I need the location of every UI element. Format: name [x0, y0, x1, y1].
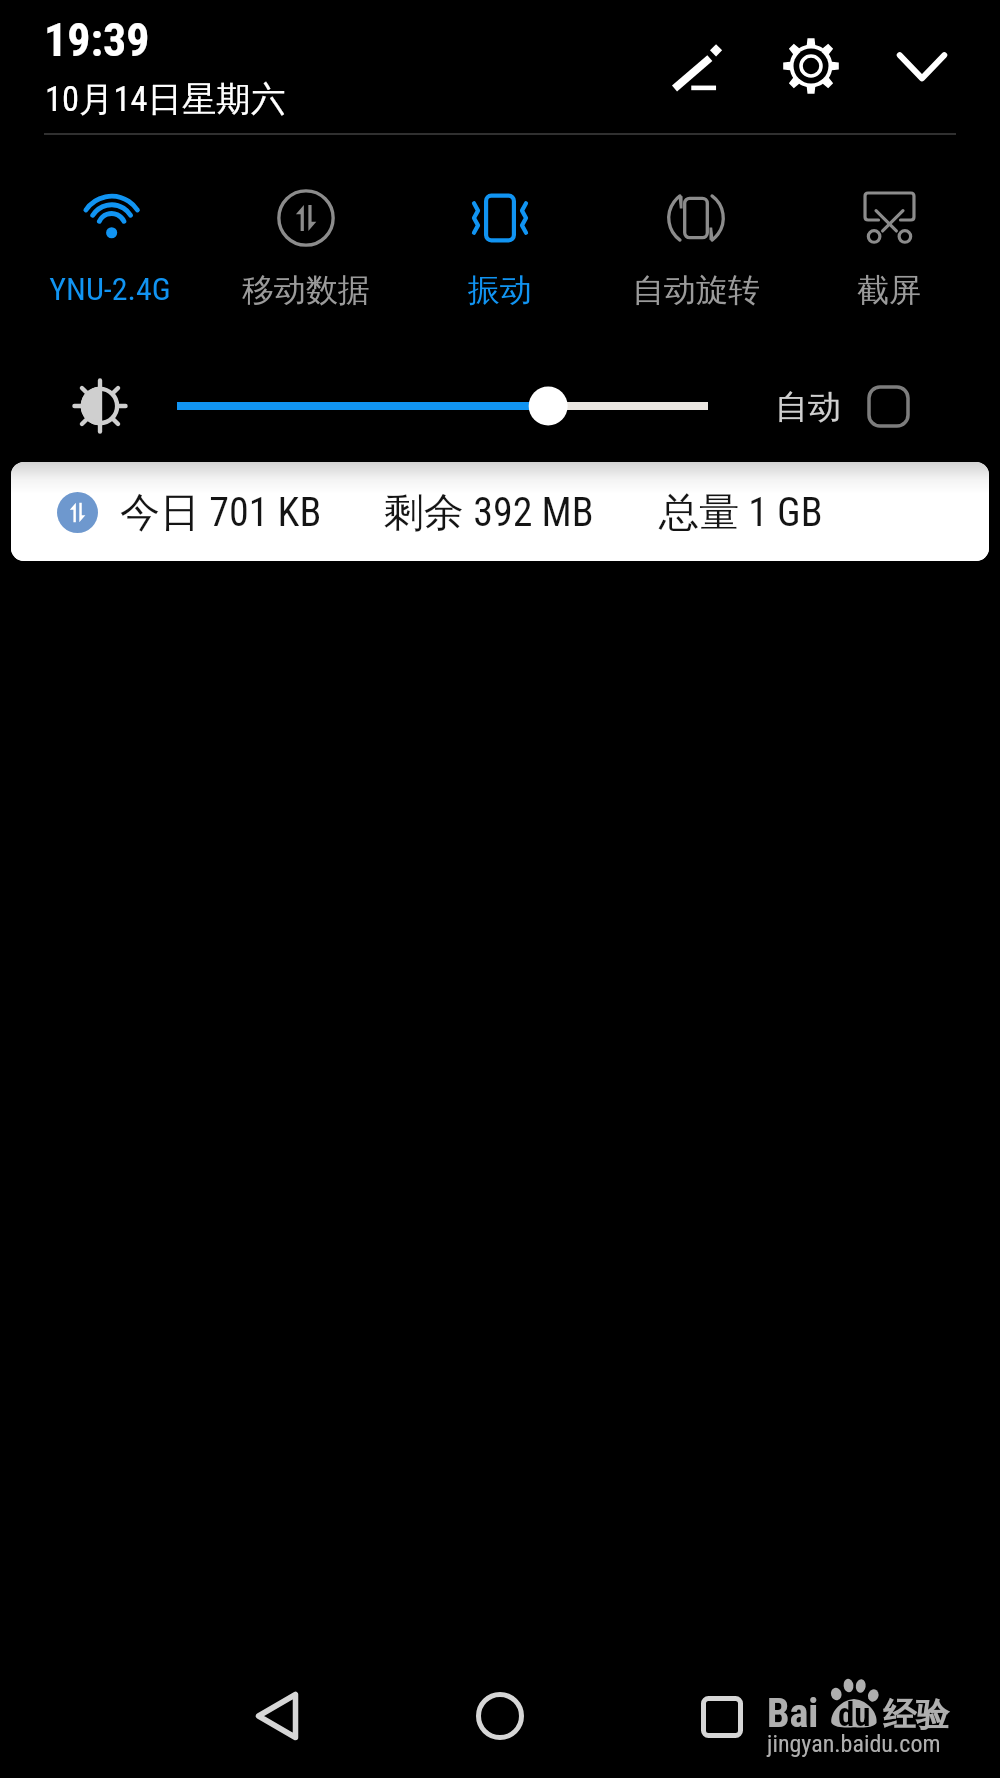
- button[interactable]: 振动: [405, 178, 595, 312]
- staticText: 移动数据: [242, 270, 370, 310]
- button[interactable]: 截屏: [794, 178, 984, 312]
- button[interactable]: Settings: [766, 21, 856, 111]
- staticText: 10月14日星期六: [45, 78, 286, 121]
- staticText: jingyan.baidu.com: [767, 1730, 941, 1758]
- button[interactable]: Collapse: [877, 21, 967, 111]
- button[interactable]: Brightness slider: [160, 381, 726, 431]
- staticText: du: [838, 1695, 871, 1734]
- button[interactable]: 今日 701 KB: [11, 462, 989, 561]
- button[interactable]: Home: [458, 1674, 542, 1758]
- staticText: 经验: [883, 1694, 949, 1736]
- button[interactable]: Edit: [654, 19, 744, 109]
- button[interactable]: Recents: [680, 1675, 764, 1759]
- staticText: 剩余 392 MB: [384, 487, 594, 537]
- button[interactable]: Auto brightness: [867, 385, 910, 428]
- staticText: 19:39: [44, 13, 150, 67]
- staticText: 总量 1 GB: [659, 487, 823, 537]
- staticText: Bai: [767, 1690, 819, 1737]
- button[interactable]: Back: [235, 1674, 319, 1758]
- button[interactable]: 移动数据: [211, 178, 401, 312]
- staticText: 今日 701 KB: [120, 487, 322, 537]
- staticText: YNU-2.4G: [49, 270, 171, 308]
- staticText: 自动: [775, 386, 841, 428]
- staticText: 截屏: [857, 270, 921, 310]
- staticText: 振动: [468, 270, 532, 310]
- staticText: 自动旋转: [632, 270, 760, 310]
- button[interactable]: Wi-Fi YNU-2.4G: [15, 178, 205, 312]
- button[interactable]: 自动旋转: [601, 178, 791, 312]
